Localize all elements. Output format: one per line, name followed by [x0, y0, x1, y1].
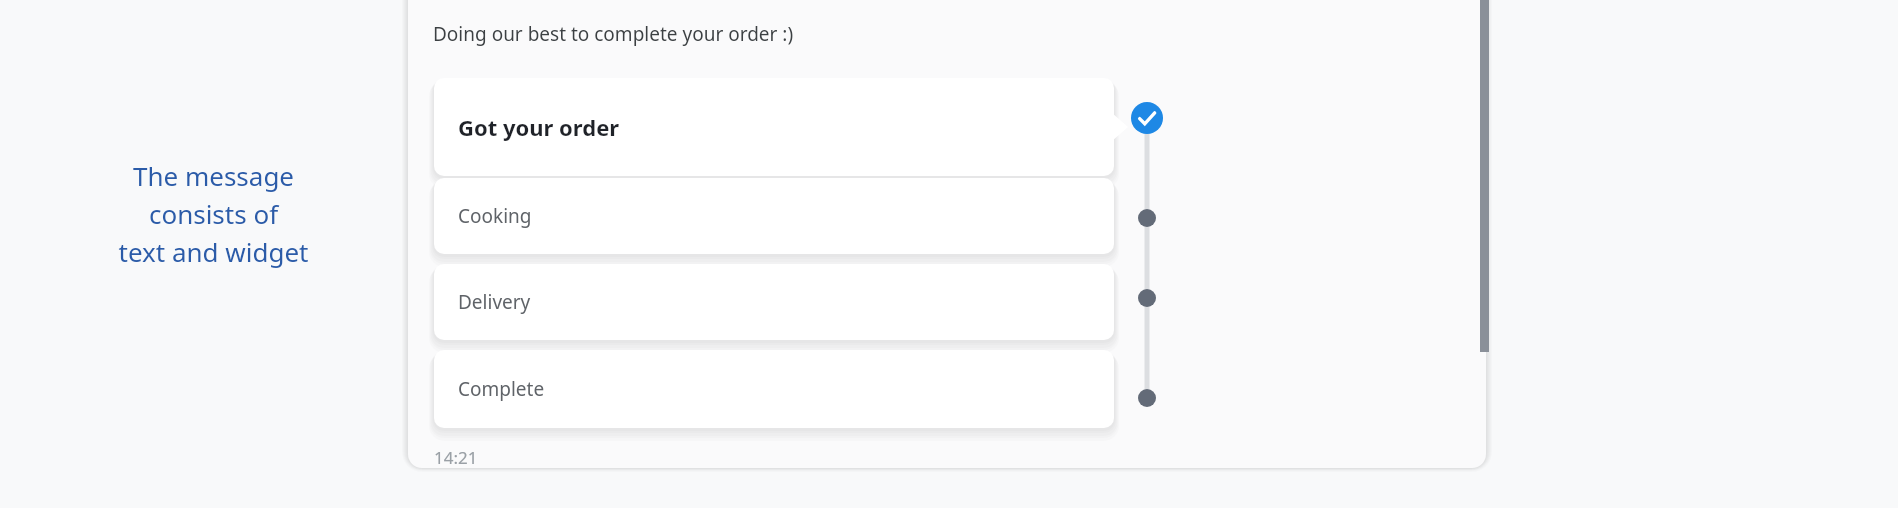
- staticText: The message consists of text and widget: [118, 158, 309, 269]
- button[interactable]: Cooking: [434, 178, 1114, 254]
- button[interactable]: Complete: [434, 350, 1114, 428]
- button[interactable]: Got your order: [434, 78, 1114, 176]
- staticText: Complete: [458, 376, 545, 402]
- staticText: Cooking: [458, 203, 532, 229]
- button[interactable]: Delivery: [434, 264, 1114, 340]
- staticText: Doing our best to complete your order :): [433, 21, 794, 47]
- button[interactable]: Order received, completed step: [1131, 102, 1163, 134]
- staticText: 14:21: [434, 446, 478, 469]
- staticText: Delivery: [458, 289, 531, 315]
- staticText: Got your order: [458, 112, 620, 142]
